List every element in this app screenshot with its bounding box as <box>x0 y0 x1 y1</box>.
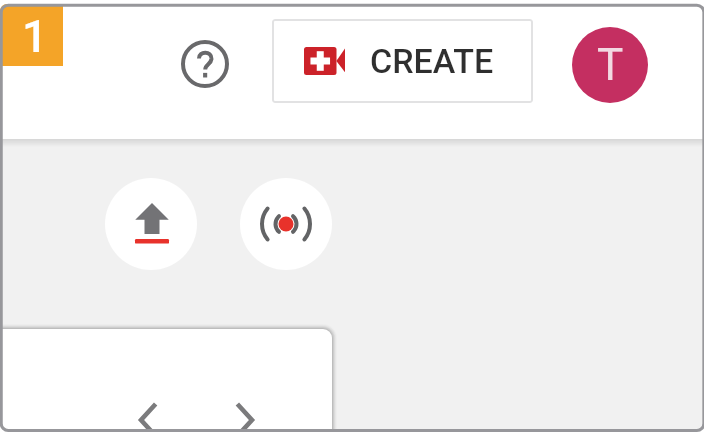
button[interactable]: Go live <box>240 178 332 270</box>
staticText: 1 <box>22 10 48 63</box>
button[interactable]: Upload a video <box>105 178 197 270</box>
button[interactable]: Previous <box>0 329 332 431</box>
button[interactable]: CREATE <box>272 19 533 103</box>
button[interactable]: Account <box>572 27 648 103</box>
staticText: CREATE <box>370 41 494 81</box>
staticText: T <box>597 39 624 91</box>
button[interactable]: Previous <box>134 401 163 431</box>
button[interactable]: Next <box>230 401 259 431</box>
button[interactable]: Help <box>173 32 237 96</box>
